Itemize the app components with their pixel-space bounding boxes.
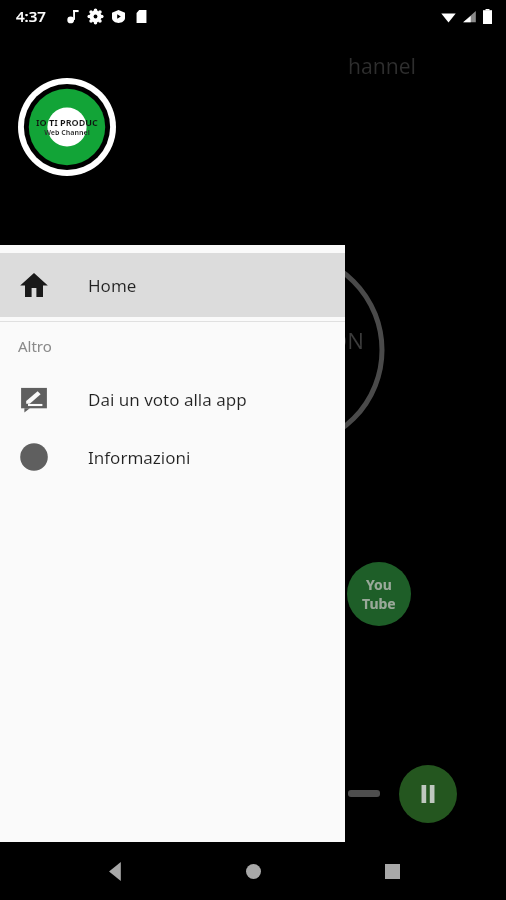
staticText: ON [330, 325, 364, 355]
staticText: IO TI PRODUC [36, 116, 98, 128]
button[interactable]: Home [0, 253, 345, 317]
staticText: Web Channel [44, 128, 90, 138]
button[interactable]: Back [91, 847, 139, 895]
staticText: Informazioni [88, 446, 191, 469]
staticText: hannel [348, 52, 416, 81]
button[interactable]: Informazioni [0, 428, 345, 486]
staticText: 4:37 [16, 6, 46, 26]
button[interactable]: YouTube [347, 562, 411, 626]
staticText: You [366, 575, 392, 594]
staticText: Dai un voto alla app [88, 388, 247, 411]
button[interactable]: Home [229, 847, 277, 895]
staticText: Home [88, 274, 137, 297]
staticText: Altro [18, 336, 52, 356]
button[interactable]: Recents [368, 847, 416, 895]
button[interactable]: Pause [399, 765, 457, 823]
button[interactable]: Dai un voto alla app [0, 370, 345, 428]
staticText: Tube [362, 594, 396, 613]
